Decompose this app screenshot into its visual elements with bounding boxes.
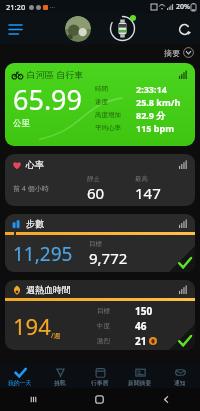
button[interactable]: 行事曆 bbox=[80, 364, 120, 388]
staticText: 60 bbox=[87, 183, 105, 203]
staticText: 前 4 個小時 bbox=[13, 184, 49, 194]
staticText: 115 bpm bbox=[136, 122, 174, 134]
staticText: 公里 bbox=[13, 118, 30, 129]
staticText: 靜止 bbox=[87, 175, 100, 183]
staticText: 21 bbox=[135, 334, 147, 348]
staticText: 平均心率 bbox=[95, 124, 121, 132]
staticText: 最高 bbox=[135, 175, 148, 183]
staticText: ··· bbox=[50, 3, 55, 11]
staticText: 目標 bbox=[97, 307, 110, 315]
button[interactable]: 週熱血時間 bbox=[5, 280, 195, 350]
staticText: 行事曆 bbox=[91, 379, 109, 386]
staticText: 11,295 bbox=[13, 241, 73, 267]
staticText: 2:33:14 bbox=[136, 83, 167, 95]
staticText: 通知 bbox=[174, 379, 186, 386]
staticText: 82.9 分 bbox=[136, 109, 166, 121]
staticText: 目標 bbox=[89, 240, 102, 248]
button[interactable]: 白河區 自行車 bbox=[5, 63, 195, 146]
staticText: 我的一天 bbox=[8, 379, 32, 386]
staticText: 25.8 km/h bbox=[136, 96, 181, 108]
button[interactable]: Menu bbox=[4, 18, 26, 40]
button[interactable]: Profile bbox=[65, 16, 91, 42]
staticText: 中度 bbox=[97, 322, 110, 330]
staticText: 高度增加 bbox=[95, 111, 121, 119]
staticText: 心率 bbox=[26, 159, 44, 170]
button[interactable]: 通知 bbox=[160, 364, 200, 388]
staticText: 150 bbox=[135, 304, 153, 318]
staticText: 9,772 bbox=[89, 248, 128, 268]
button[interactable]: 步數 bbox=[5, 214, 195, 272]
staticText: 挑戰 bbox=[54, 379, 66, 386]
staticText: 白河區 自行車 bbox=[27, 68, 84, 80]
button[interactable]: 摘要 bbox=[164, 47, 194, 58]
staticText: 46 bbox=[135, 319, 147, 333]
staticText: /週 bbox=[51, 331, 61, 341]
staticText: 20% bbox=[176, 2, 190, 12]
button[interactable]: Sync bbox=[173, 18, 195, 40]
button[interactable]: 新聞摘要 bbox=[120, 364, 160, 388]
button[interactable]: 心率 bbox=[5, 154, 195, 206]
staticText: 激烈 bbox=[97, 337, 110, 345]
staticText: 21:20 bbox=[6, 2, 26, 12]
staticText: 194 bbox=[13, 311, 51, 341]
staticText: 速度 bbox=[95, 98, 108, 106]
button[interactable]: Watch status bbox=[109, 15, 136, 42]
staticText: 新聞摘要 bbox=[128, 379, 152, 386]
staticText: 週熱血時間 bbox=[26, 284, 71, 295]
staticText: 65.99 bbox=[13, 81, 83, 118]
staticText: 摘要 bbox=[164, 48, 180, 58]
button[interactable]: 挑戰 bbox=[40, 364, 80, 388]
staticText: 時間 bbox=[95, 85, 108, 93]
button[interactable]: 我的一天 bbox=[0, 364, 40, 388]
staticText: 步數 bbox=[26, 218, 44, 229]
staticText: 147 bbox=[135, 183, 161, 203]
